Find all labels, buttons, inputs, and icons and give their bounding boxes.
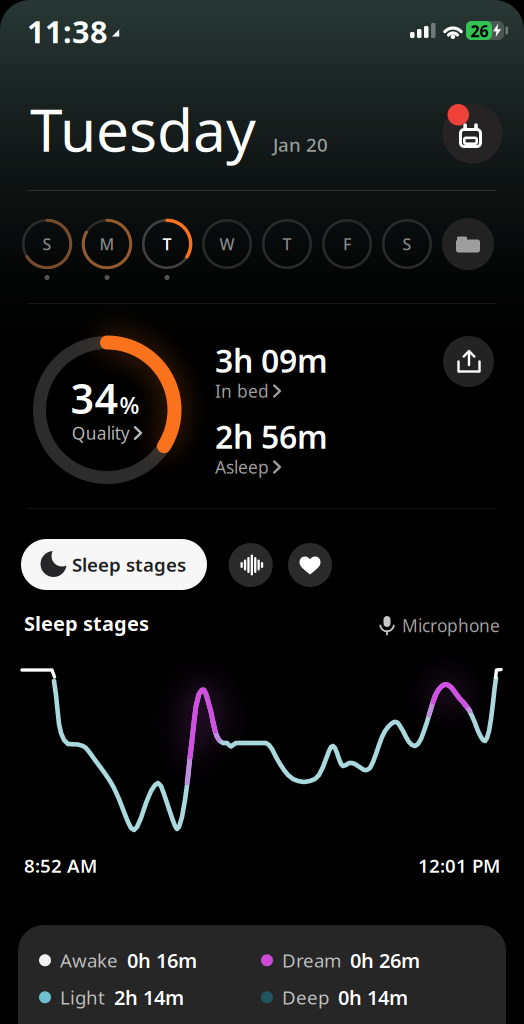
staticText: Light [60,985,105,1010]
staticText: 3h 09m [215,339,328,381]
button[interactable]: Share [443,336,494,387]
staticText: 12:01 PM [418,853,500,878]
button[interactable]: Microphone [260,614,500,637]
button[interactable]: 2h 56m [215,415,328,478]
staticText: T [162,233,171,255]
staticText: In bed [215,379,269,402]
button[interactable]: Sleep notes [442,218,494,270]
button[interactable]: Calendar [442,103,502,163]
button[interactable]: Sleep quality 34 percent [32,335,182,485]
staticText: Jan 20 [273,132,328,157]
staticText: T [282,233,291,255]
button[interactable]: Day T [142,219,192,269]
button[interactable]: 3h 09m [215,339,328,402]
staticText: Asleep [215,455,269,478]
staticText: Sleep stages [24,610,149,637]
staticText: 0h 16m [127,947,197,974]
button[interactable]: Day M [82,219,132,269]
staticText: F [343,233,351,255]
staticText: Sleep stages [72,552,186,577]
staticText: % [119,390,139,420]
button[interactable]: Sounds [229,543,273,587]
button[interactable]: Day S [382,219,432,269]
button[interactable]: Day W [202,219,252,269]
staticText: 0h 26m [350,947,420,974]
staticText: S [402,233,411,255]
staticText: 0h 14m [338,984,408,1011]
button[interactable]: Heart rate [288,543,332,587]
button[interactable]: Sleep stages [21,539,207,590]
staticText: 34 [70,371,118,425]
staticText: 8:52 AM [24,853,97,878]
staticText: Dream [282,948,341,973]
staticText: S [42,233,51,255]
staticText: 2h 56m [215,415,328,457]
staticText: 11:38 [27,11,108,52]
staticText: Awake [60,948,118,973]
button[interactable]: Day F [322,219,372,269]
staticText: Deep [282,985,329,1010]
button[interactable]: Day S [22,219,72,269]
staticText: Quality [72,421,130,444]
staticText: Microphone [402,614,500,637]
staticText: 2h 14m [114,984,184,1011]
staticText: M [99,233,114,255]
staticText: Tuesday [30,90,256,168]
button[interactable]: Day T [262,219,312,269]
staticText: 26 [470,20,488,42]
staticText: W [219,233,234,255]
